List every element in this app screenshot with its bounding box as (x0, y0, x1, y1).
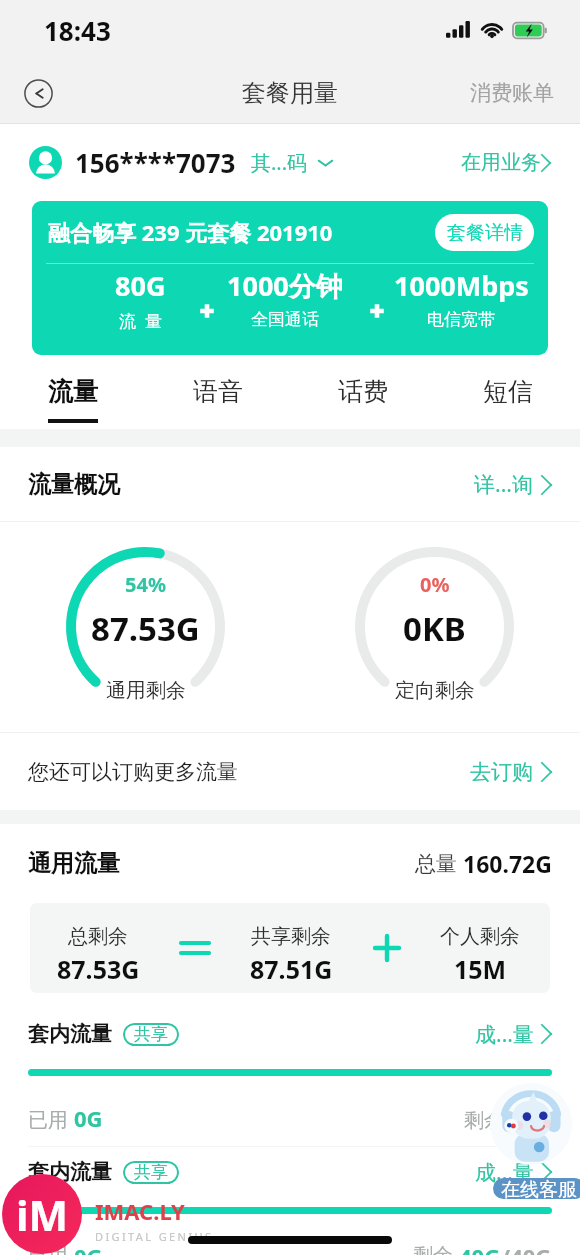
staticText: 去订购 (470, 759, 533, 785)
staticText: 已用 (28, 1106, 74, 1133)
staticText: 总量 (415, 849, 463, 878)
button[interactable]: 套内流量 (28, 1147, 552, 1197)
button[interactable]: 消费账单 (444, 70, 580, 116)
staticText: 在用业务 (461, 150, 541, 175)
staticText: DIGITAL GENIUS (95, 1229, 214, 1244)
staticText: 共享 (134, 1024, 168, 1045)
staticText: 成...量 (475, 1020, 534, 1049)
staticText: 套内流量 (28, 1159, 112, 1185)
staticText: 1000Mbps (394, 267, 529, 304)
button[interactable]: Online customer service (490, 1083, 572, 1165)
staticText: 80G (115, 267, 166, 304)
staticText: 套内流量 (28, 1021, 112, 1047)
staticText: 87.51G (250, 952, 333, 986)
staticText: 套餐用量 (242, 78, 338, 108)
staticText: 0G (74, 1103, 103, 1133)
staticText: 详...询 (474, 470, 533, 499)
staticText: 在线客服 (501, 1178, 577, 1199)
staticText: 已用 (28, 1241, 74, 1255)
staticText: 话费 (338, 376, 388, 407)
button[interactable]: 在线客服 (493, 1178, 580, 1199)
staticText: 87.53G (91, 606, 200, 651)
button[interactable]: 其...码 (251, 149, 334, 176)
staticText: 0G (74, 1241, 103, 1255)
staticText: 个人剩余 (440, 924, 520, 949)
button[interactable]: 语音 (145, 355, 290, 429)
staticText: 18:43 (44, 13, 111, 48)
staticText: 电信宽带 (427, 309, 495, 330)
staticText: 通用流量 (28, 849, 120, 878)
staticText: 0% (420, 571, 450, 598)
button[interactable]: 套内流量 (28, 1009, 552, 1059)
staticText: 剩余 (413, 1241, 459, 1255)
staticText: 定向剩余 (395, 678, 475, 703)
staticText: 40G (459, 1241, 501, 1255)
staticText: iM (16, 1186, 69, 1243)
button[interactable]: 融合畅享 239 元套餐 201910 (32, 201, 548, 355)
staticText: 40G (510, 1103, 552, 1133)
staticText: 156****7073 (75, 145, 236, 180)
button[interactable]: 短信 (435, 355, 580, 429)
staticText: 0KB (403, 606, 466, 651)
staticText: 流量概况 (28, 470, 120, 499)
staticText: 总剩余 (68, 924, 128, 949)
staticText: IMAC.LY (95, 1196, 185, 1226)
staticText: 套餐详情 (447, 221, 523, 245)
staticText: 融合畅享 239 元套餐 201910 (48, 217, 333, 247)
staticText: 160.72G (463, 848, 552, 879)
button[interactable]: 在用业务 (461, 150, 551, 175)
staticText: /40G (501, 1241, 552, 1255)
staticText: 15M (454, 952, 507, 986)
staticText: 消费账单 (470, 80, 554, 106)
staticText: 共享剩余 (251, 924, 331, 949)
staticText: 成...量 (475, 1158, 534, 1187)
staticText: 共享 (134, 1162, 168, 1183)
button[interactable]: 流量 (0, 355, 145, 429)
staticText: 剩余 (464, 1106, 510, 1133)
staticText: 语音 (193, 376, 243, 407)
staticText: 54% (125, 571, 166, 598)
staticText: 其...码 (251, 149, 308, 176)
staticText: 您还可以订购更多流量 (28, 759, 238, 785)
button[interactable]: 您还可以订购更多流量 (28, 733, 552, 810)
button[interactable]: 话费 (290, 355, 435, 429)
staticText: 全国通话 (251, 309, 319, 330)
staticText: 87.53G (57, 952, 140, 986)
button[interactable]: Back (18, 73, 58, 113)
staticText: 流 量 (119, 309, 162, 332)
button[interactable]: 套餐详情 (435, 214, 534, 251)
staticText: 通用剩余 (106, 678, 186, 703)
staticText: 短信 (483, 376, 533, 407)
staticText: 1000分钟 (227, 267, 343, 304)
button[interactable]: 详...询 (474, 470, 552, 499)
staticText: 流量 (48, 376, 98, 407)
